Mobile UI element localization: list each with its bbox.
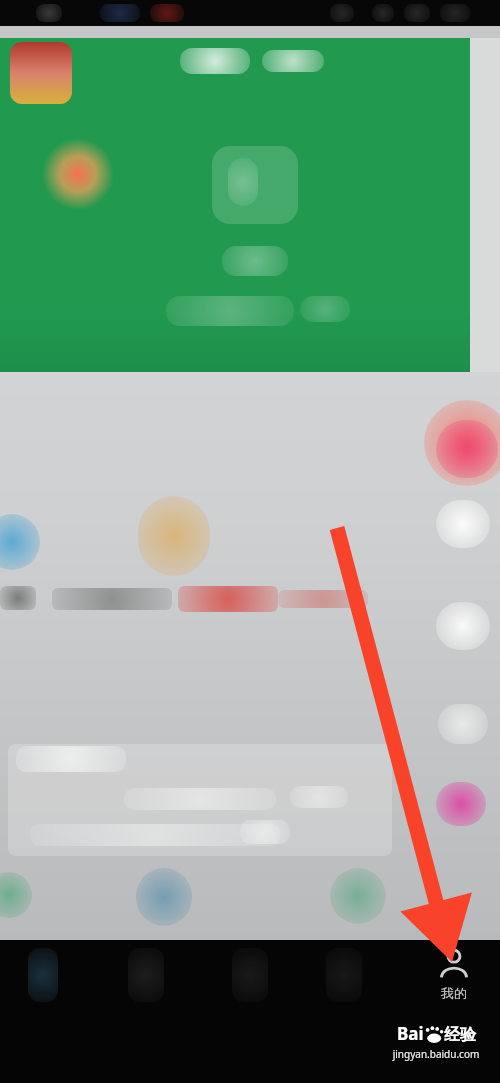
button[interactable] xyxy=(0,38,472,372)
button[interactable] xyxy=(42,138,114,210)
staticText: 经验 xyxy=(444,1025,476,1045)
button[interactable] xyxy=(10,42,72,104)
button[interactable]: 我的 xyxy=(418,946,490,1016)
staticText: Bai xyxy=(397,1022,424,1045)
staticText: 我的 xyxy=(418,985,490,1001)
staticText: jingyan.baidu.com xyxy=(378,1047,494,1061)
other: 我的 xyxy=(437,946,471,980)
button[interactable] xyxy=(8,744,392,856)
